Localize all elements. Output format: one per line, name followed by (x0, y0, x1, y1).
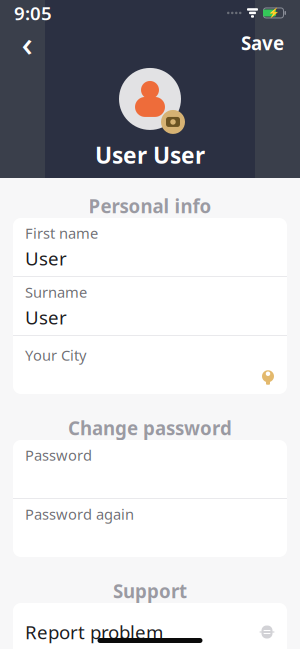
staticText: Change password (68, 416, 232, 440)
button[interactable]: Save (235, 28, 290, 58)
staticText: User User (95, 140, 205, 170)
button[interactable]: First name (13, 218, 287, 276)
button[interactable]: Back (10, 26, 44, 60)
button[interactable]: Report problem (13, 603, 287, 649)
staticText: Surname (25, 282, 87, 302)
staticText: 9:05 (14, 1, 52, 25)
staticText: Support (113, 579, 187, 603)
staticText: ‹ (21, 20, 32, 66)
button[interactable]: Your City location (13, 336, 287, 394)
button[interactable]: Password again (13, 499, 287, 557)
staticText: User (25, 305, 67, 330)
button[interactable]: Password (13, 440, 287, 498)
staticText: Password (25, 445, 92, 465)
staticText: User (25, 246, 67, 271)
staticText: Report problem (25, 620, 163, 644)
staticText: ⚡ (267, 8, 279, 18)
staticText: Your City (25, 345, 86, 365)
staticText: First name (25, 223, 98, 243)
button[interactable]: Change profile photo (114, 64, 186, 134)
staticText: Password again (25, 504, 134, 524)
staticText: Personal info (88, 194, 211, 218)
staticText: Save (241, 31, 284, 55)
button[interactable]: Surname (13, 277, 287, 335)
